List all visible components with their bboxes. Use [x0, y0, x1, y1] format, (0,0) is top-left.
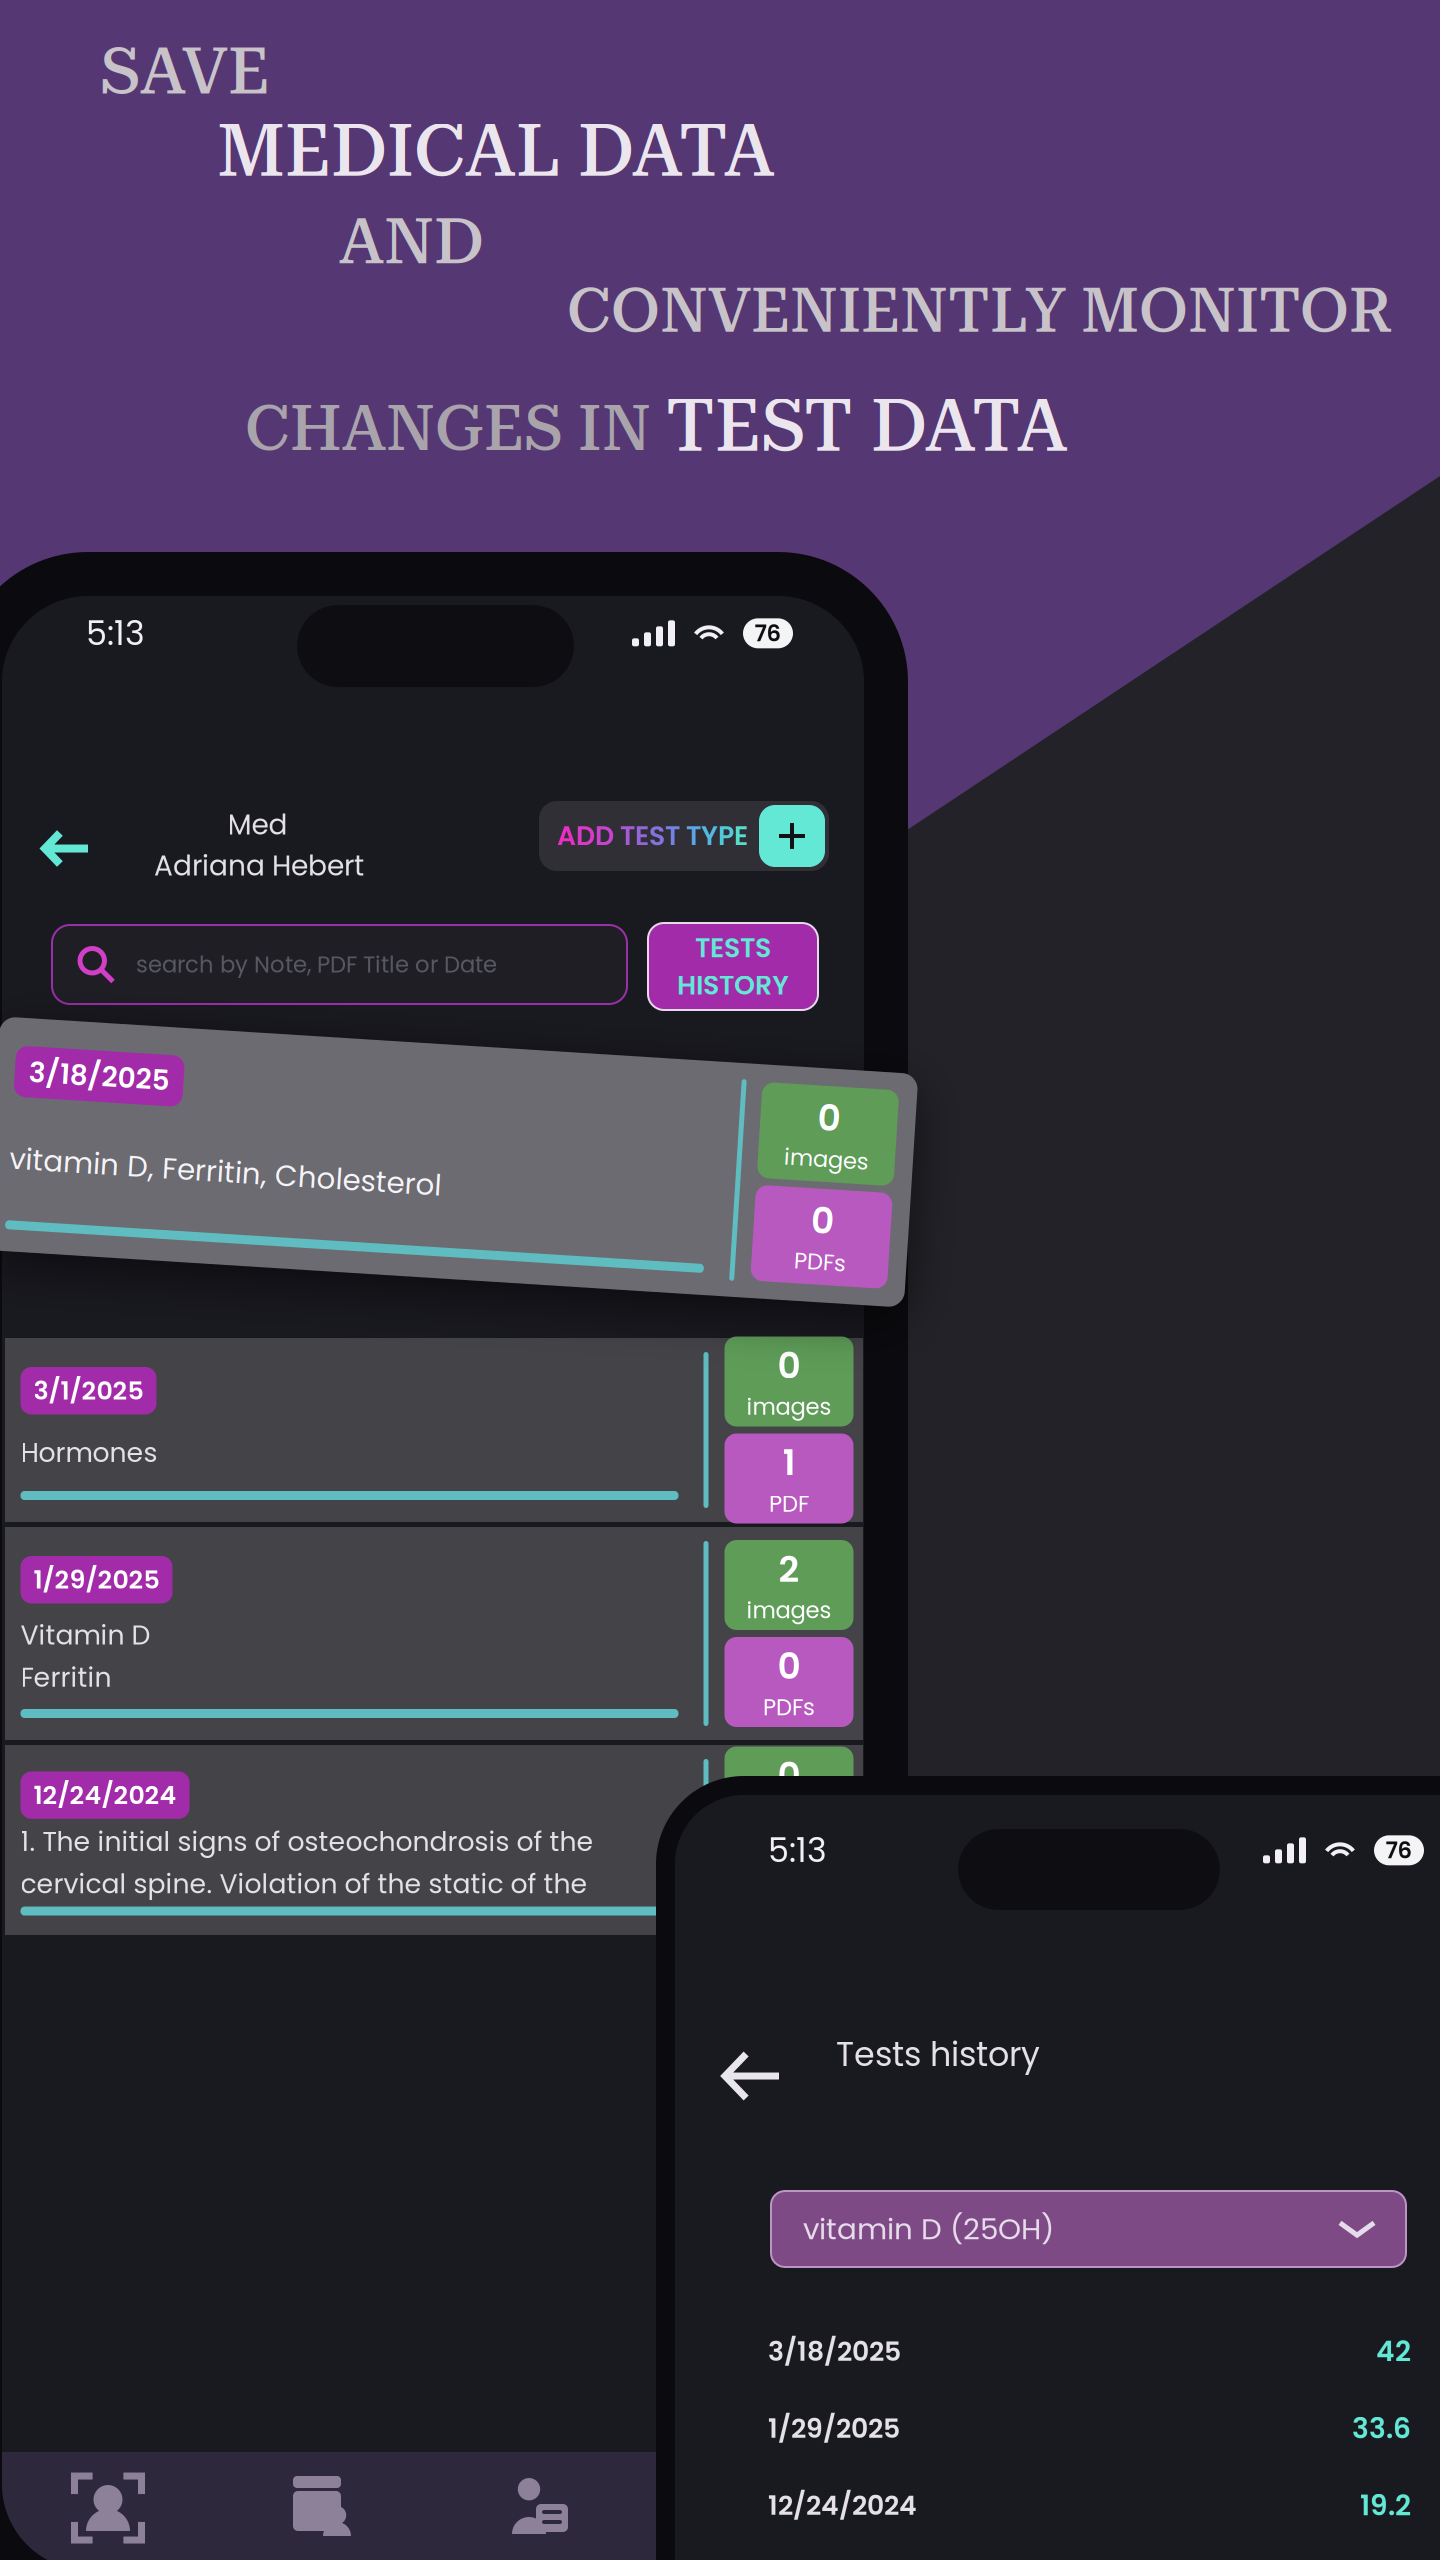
staticText: MEDICAL DATA — [217, 109, 775, 193]
staticText: PDFs — [763, 1691, 815, 1723]
staticText: 5:13 — [768, 1827, 827, 1874]
staticText: TESTS — [695, 929, 771, 966]
staticText: 12/24/2024 — [33, 1777, 176, 1813]
staticText: T — [686, 817, 701, 855]
staticText: TEST DATA — [666, 384, 1068, 468]
staticText: vitamin D, Ferritin, Cholesterol — [10, 1166, 443, 1207]
button[interactable]: 1/29/2025 — [5, 1527, 863, 1740]
staticText: 42 — [1376, 2332, 1411, 2371]
staticText: 76 — [1385, 1834, 1412, 1866]
staticText: A — [557, 817, 576, 855]
staticText: 0 — [777, 1847, 800, 1898]
staticText: Med — [227, 805, 287, 844]
staticText: Tests history — [836, 2031, 1040, 2078]
staticText: Adriana Hebert — [154, 846, 364, 885]
staticText: D — [595, 817, 614, 855]
staticText: 3/18/2025 — [768, 2333, 901, 2370]
staticText: E — [734, 817, 748, 855]
staticText: PDFs — [799, 1223, 851, 1254]
staticText: 19.2 — [1360, 2486, 1411, 2525]
staticText: T — [665, 817, 680, 855]
button[interactable]: 3/18/2025 — [0, 1045, 912, 1279]
button[interactable]: Back — [703, 2032, 801, 2120]
button[interactable]: TESTS — [648, 923, 818, 1010]
staticText: 0 — [777, 1750, 800, 1801]
staticText: cervical spine. Violation of the static … — [20, 1865, 587, 1902]
staticText: CONVENIENTLY MONITOR — [567, 275, 1392, 347]
staticText: 0 — [814, 1069, 837, 1120]
staticText: PDF — [769, 1488, 809, 1519]
staticText: E — [635, 817, 649, 855]
button[interactable]: More — [648, 2452, 864, 2560]
staticText: AND — [339, 204, 484, 279]
staticText: 1. The initial signs of osteochondrosis … — [20, 1823, 593, 1860]
staticText: HISTORY — [677, 966, 789, 1004]
staticText: 12/24/2024 — [768, 2487, 917, 2524]
staticText: Hormones — [20, 1434, 157, 1471]
staticText: vitamin D (25OH) — [803, 2208, 1054, 2250]
staticText: 0 — [777, 1340, 800, 1391]
button[interactable]: 12/24/2024 — [5, 1745, 863, 1935]
staticText: T — [620, 817, 635, 855]
button[interactable]: vitamin D (25OH) — [771, 2191, 1406, 2267]
staticText: images — [783, 1120, 868, 1151]
staticText: images — [746, 1594, 831, 1626]
staticText: 5:13 — [86, 610, 145, 657]
staticText: 3/18/2025 — [24, 1079, 165, 1118]
staticText: SAVE — [100, 33, 270, 109]
button[interactable]: A — [539, 801, 829, 871]
staticText: P — [718, 817, 734, 855]
button[interactable]: Records — [216, 2452, 432, 2560]
staticText: 1/29/2025 — [33, 1562, 159, 1597]
staticText: search by Note, PDF Title or Date — [136, 949, 497, 980]
staticText: images — [746, 1391, 831, 1422]
button[interactable]: Scan document — [0, 2452, 216, 2560]
staticText: 0 — [777, 1641, 800, 1691]
button[interactable]: Back — [23, 811, 110, 886]
staticText: D — [576, 817, 595, 855]
staticText: CHANGES IN — [245, 392, 651, 465]
staticText: 2 — [778, 1544, 799, 1594]
staticText: 3/1/2025 — [33, 1373, 143, 1408]
staticText: 76 — [754, 617, 781, 649]
button[interactable]: 3/1/2025 — [5, 1338, 863, 1522]
button[interactable]: Profile — [432, 2452, 648, 2560]
staticText: Y — [701, 817, 718, 855]
staticText: S — [649, 817, 665, 855]
staticText: Ferritin — [20, 1659, 111, 1696]
staticText: 1/29/2025 — [768, 2410, 900, 2447]
staticText: 33.6 — [1352, 2409, 1411, 2448]
staticText: 1 — [782, 1437, 795, 1488]
staticText: Vitamin D — [20, 1616, 150, 1654]
staticText: 0 — [814, 1172, 837, 1223]
